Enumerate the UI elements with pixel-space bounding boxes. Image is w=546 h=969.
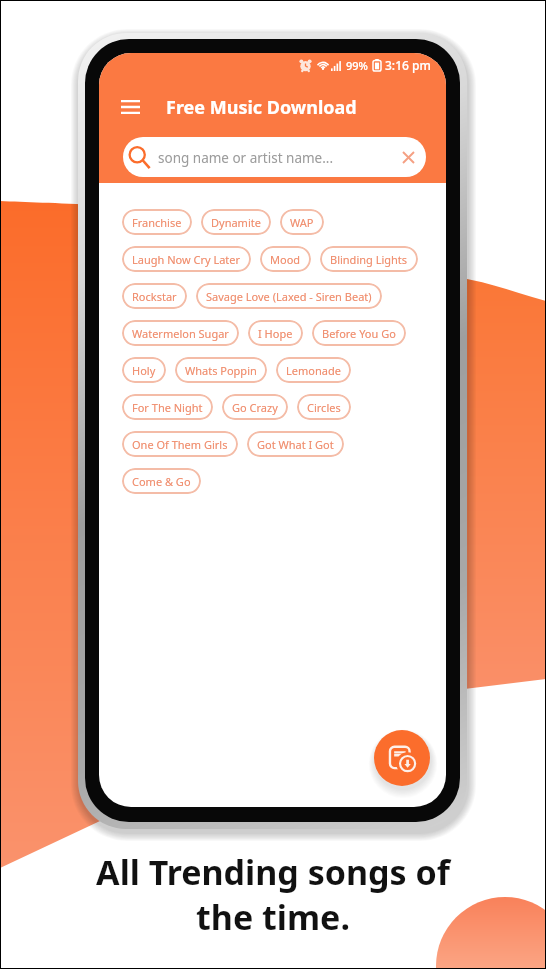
button[interactable]: Laugh Now Cry Later [122,246,251,272]
staticText: Before You Go [322,326,396,341]
button[interactable]: Got What I Got [247,431,344,457]
button[interactable]: Whats Poppin [175,357,267,383]
staticText: Holy [132,363,156,378]
staticText: All Trending songs of the time. [96,849,450,939]
staticText: Savage Love (Laxed - Siren Beat) [206,289,372,304]
button[interactable]: Rockstar [122,283,187,309]
button[interactable]: Franchise [122,209,192,235]
staticText: Free Music Download [166,95,357,120]
button[interactable]: Clear search [400,149,416,165]
button[interactable]: Come & Go [122,468,201,494]
staticText: 99% [346,58,368,73]
button[interactable]: Mood [260,246,311,272]
staticText: Watermelon Sugar [132,326,229,341]
button[interactable]: I Hope [248,320,303,346]
button[interactable]: Dynamite [201,209,271,235]
button[interactable]: Watermelon Sugar [122,320,239,346]
staticText: Whats Poppin [185,363,257,378]
button[interactable]: WAP [280,209,324,235]
staticText: Dynamite [211,215,261,230]
staticText: Come & Go [132,474,191,489]
staticText: WAP [290,215,314,230]
button[interactable]: One Of Them Girls [122,431,238,457]
button[interactable]: Holy [122,357,166,383]
staticText: Go Crazy [232,400,278,415]
button[interactable]: Menu [116,93,144,121]
button[interactable]: Blinding Lights [320,246,418,272]
staticText: Blinding Lights [330,252,408,267]
staticText: Circles [307,400,341,415]
button[interactable]: Before You Go [312,320,406,346]
staticText: Mood [270,252,301,267]
button[interactable]: Download [374,730,430,786]
button[interactable]: Go Crazy [222,394,288,420]
staticText: One Of Them Girls [132,437,228,452]
button[interactable]: For The Night [122,394,213,420]
staticText: Lemonade [286,363,341,378]
staticText: Got What I Got [257,437,334,452]
button[interactable]: Savage Love (Laxed - Siren Beat) [196,283,382,309]
staticText: Rockstar [132,289,177,304]
button[interactable]: Lemonade [276,357,351,383]
staticText: Franchise [132,215,182,230]
staticText: song name or artist name... [158,149,334,167]
staticText: Laugh Now Cry Later [132,252,241,267]
staticText: For The Night [132,400,203,415]
button[interactable]: song name or artist name... [123,137,426,177]
staticText: I Hope [258,326,293,341]
staticText: 3:16 pm [385,57,431,73]
button[interactable]: Circles [297,394,351,420]
